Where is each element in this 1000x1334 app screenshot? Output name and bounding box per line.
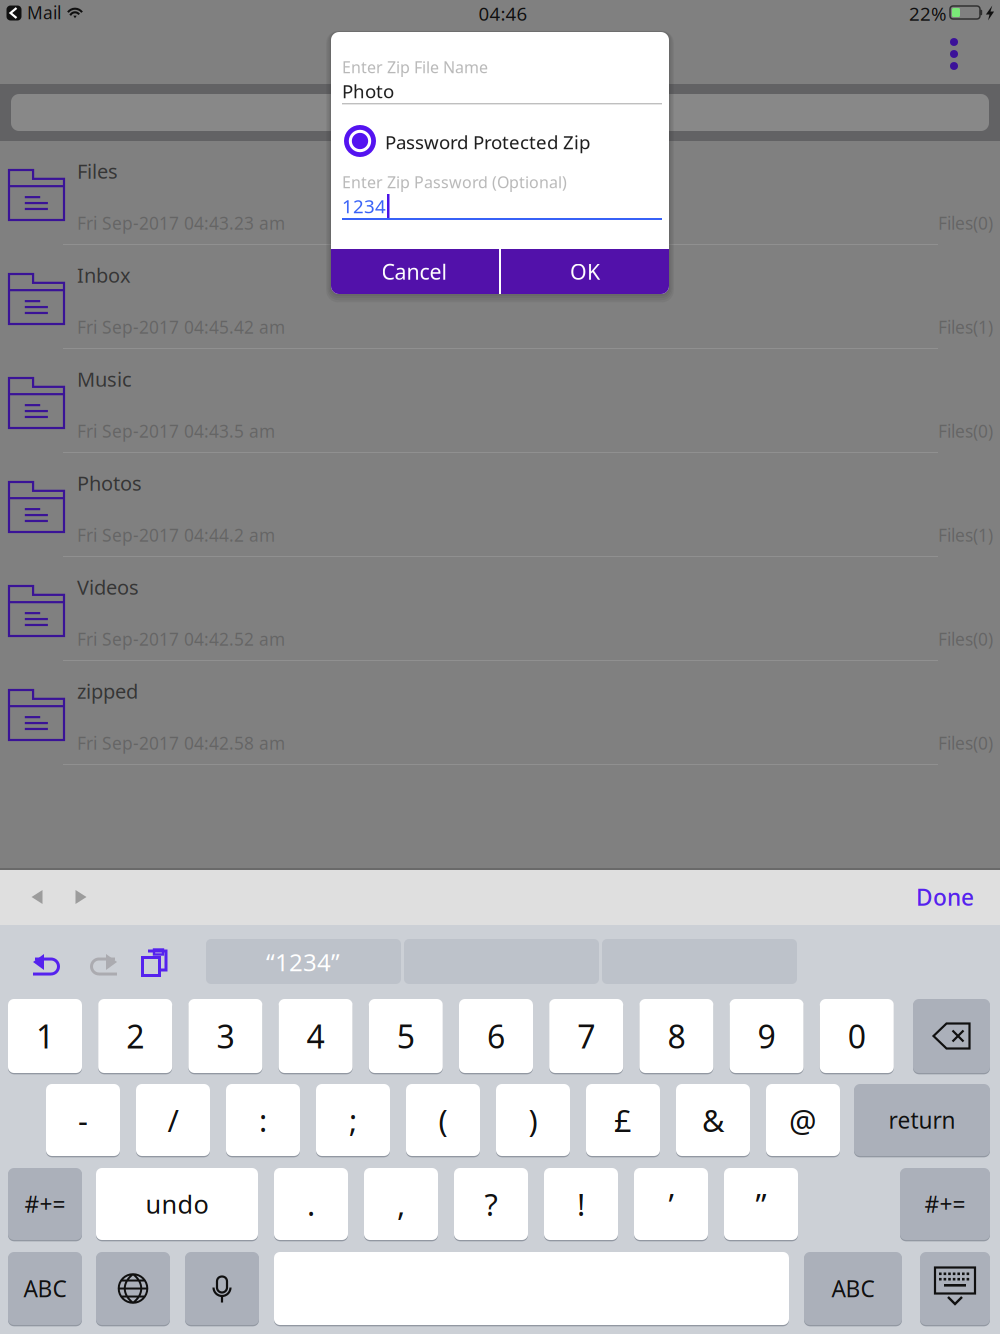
button[interactable]: Done [854, 874, 974, 920]
button[interactable]: 3 [188, 999, 262, 1076]
staticText: Files(0) [938, 731, 993, 754]
staticText: ABC [23, 1273, 66, 1303]
staticText: Fri Sep-2017 04:43.23 am [77, 211, 285, 234]
button[interactable]: . [274, 1168, 348, 1243]
staticText: Password Protected Zip [385, 130, 590, 154]
button[interactable]: Photos [0, 453, 1000, 557]
button[interactable]: 4 [279, 999, 353, 1076]
staticText: Videos [77, 574, 139, 600]
button[interactable]: Inbox [0, 245, 1000, 349]
staticText: £ [614, 1100, 632, 1140]
button[interactable]: ? [454, 1168, 528, 1243]
staticText: “1234” [266, 946, 340, 978]
staticText: 5 [397, 1015, 415, 1057]
button[interactable]: ( [406, 1084, 480, 1159]
staticText: OK [570, 257, 600, 286]
staticText: Photo [342, 79, 394, 103]
button[interactable]: ! [544, 1168, 618, 1243]
button[interactable]: : [226, 1084, 300, 1159]
button[interactable]: 1 [8, 999, 82, 1076]
button[interactable]: More options [932, 32, 976, 76]
staticText: 04:46 [478, 1, 527, 26]
button[interactable]: £ [586, 1084, 660, 1159]
button[interactable]: & [676, 1084, 750, 1159]
staticText: Enter Zip Password (Optional) [342, 171, 567, 193]
staticText: / [167, 1100, 178, 1140]
staticText: Files(0) [938, 627, 993, 650]
staticText: Mail [27, 1, 61, 24]
button[interactable]: Music [0, 349, 1000, 453]
staticText: Enter Zip File Name [342, 56, 488, 78]
button[interactable]: ABC [804, 1252, 902, 1328]
button[interactable]: Delete [913, 999, 990, 1076]
button[interactable]: #+= [8, 1168, 82, 1243]
button[interactable]: ) [496, 1084, 570, 1159]
staticText: Files(0) [938, 419, 993, 442]
button[interactable]: Files [0, 141, 1000, 245]
staticText: #+= [24, 1189, 65, 1219]
button[interactable]: 7 [549, 999, 623, 1076]
staticText: zipped [77, 678, 138, 704]
button[interactable]: zipped [0, 661, 1000, 765]
button[interactable]: , [364, 1168, 438, 1243]
staticText: ’ [668, 1184, 673, 1224]
button[interactable]: Cancel [331, 249, 498, 294]
staticText: . [307, 1184, 315, 1224]
button[interactable]: 6 [459, 999, 533, 1076]
staticText: ) [528, 1100, 537, 1140]
staticText: 6 [487, 1015, 505, 1057]
button[interactable]: Videos [0, 557, 1000, 661]
button[interactable]: / [136, 1084, 210, 1159]
button[interactable]: 2 [98, 999, 172, 1076]
staticText: Done [916, 882, 974, 912]
button[interactable]: - [46, 1084, 120, 1159]
staticText: ? [484, 1184, 497, 1224]
button[interactable]: 8 [639, 999, 713, 1076]
staticText: 2 [126, 1015, 144, 1057]
staticText: ! [577, 1184, 585, 1224]
staticText: 9 [758, 1015, 776, 1057]
button[interactable]: #+= [900, 1168, 990, 1243]
button[interactable]: @ [766, 1084, 840, 1159]
staticText: 22% [909, 1, 947, 26]
button[interactable]: Paste [141, 949, 185, 993]
button[interactable] [274, 1252, 789, 1328]
button[interactable]: Redo [89, 950, 133, 994]
staticText: undo [145, 1187, 208, 1221]
staticText: Fri Sep-2017 04:42.58 am [77, 731, 285, 754]
button[interactable]: 0 [820, 999, 894, 1076]
staticText: #+= [924, 1189, 965, 1219]
staticText: 4 [307, 1015, 325, 1057]
staticText: 1234 [342, 194, 386, 218]
button[interactable]: 5 [369, 999, 443, 1076]
staticText: return [888, 1105, 955, 1135]
button[interactable]: Next field [59, 875, 103, 919]
staticText: , [397, 1184, 405, 1224]
staticText: : [259, 1100, 267, 1140]
staticText: 3 [216, 1015, 234, 1057]
staticText: Files(1) [938, 523, 993, 546]
button[interactable]: ” [724, 1168, 798, 1243]
button[interactable]: Dictation [185, 1252, 259, 1328]
staticText: 0 [848, 1015, 866, 1057]
staticText: & [702, 1100, 724, 1140]
button[interactable]: OK [501, 249, 669, 294]
staticText: Fri Sep-2017 04:43.5 am [77, 419, 275, 442]
staticText: ” [755, 1184, 766, 1224]
button[interactable]: Previous field [15, 875, 59, 919]
staticText: Cancel [381, 257, 447, 286]
button[interactable]: Undo [33, 950, 77, 994]
staticText: 7 [577, 1015, 595, 1057]
button[interactable]: Next keyboard [96, 1252, 170, 1328]
staticText: Fri Sep-2017 04:45.42 am [77, 315, 285, 338]
button[interactable]: undo [96, 1168, 258, 1243]
button[interactable]: ’ [634, 1168, 708, 1243]
button[interactable]: return [854, 1084, 990, 1159]
button[interactable]: Back to Mail [1, 0, 27, 26]
button[interactable]: ABC [8, 1252, 82, 1328]
button[interactable]: 9 [730, 999, 804, 1076]
button[interactable]: Dismiss keyboard [920, 1252, 990, 1328]
button[interactable]: ; [316, 1084, 390, 1159]
staticText: 1 [36, 1015, 54, 1057]
staticText: ; [349, 1100, 357, 1140]
